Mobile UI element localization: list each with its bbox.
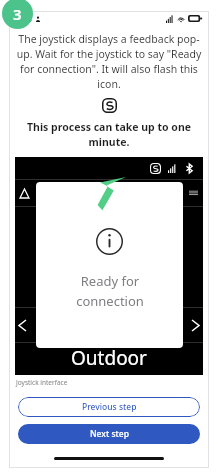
staticText: Next step	[90, 428, 129, 440]
staticText: 9:24	[16, 13, 32, 24]
button[interactable]: Previous step	[18, 397, 200, 417]
staticText: The joystick displays a feedback pop-up.…	[16, 32, 202, 91]
staticText: Joystick interface	[16, 378, 68, 387]
staticText: This process can take up to one minute.	[19, 120, 199, 149]
staticText: Ready for connection	[76, 272, 144, 310]
staticText: Outdoor	[71, 345, 147, 371]
button[interactable]: Next step	[18, 424, 200, 444]
staticText: Previous step	[82, 401, 137, 413]
staticText: 3	[13, 4, 22, 24]
